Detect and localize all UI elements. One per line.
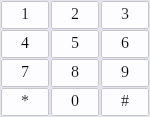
button[interactable]: 1 [1, 1, 49, 29]
staticText: 0 [71, 92, 79, 110]
button[interactable]: 7 [1, 59, 49, 87]
staticText: # [121, 92, 129, 110]
button[interactable]: 0 [51, 88, 99, 116]
button[interactable]: 6 [101, 30, 149, 58]
button[interactable]: 5 [51, 30, 99, 58]
button[interactable]: 8 [51, 59, 99, 87]
button[interactable]: 2 [51, 1, 99, 29]
staticText: 8 [71, 63, 79, 81]
staticText: 9 [121, 63, 129, 81]
button[interactable]: * [1, 88, 49, 116]
button[interactable]: 9 [101, 59, 149, 87]
button[interactable]: # [101, 88, 149, 116]
staticText: 7 [21, 63, 29, 81]
staticText: 4 [21, 34, 29, 52]
staticText: 6 [121, 34, 129, 52]
staticText: 5 [71, 34, 79, 52]
staticText: 2 [71, 5, 79, 23]
staticText: * [21, 92, 29, 110]
button[interactable]: 3 [101, 1, 149, 29]
staticText: 1 [21, 5, 29, 23]
button[interactable]: 4 [1, 30, 49, 58]
staticText: 3 [121, 5, 129, 23]
